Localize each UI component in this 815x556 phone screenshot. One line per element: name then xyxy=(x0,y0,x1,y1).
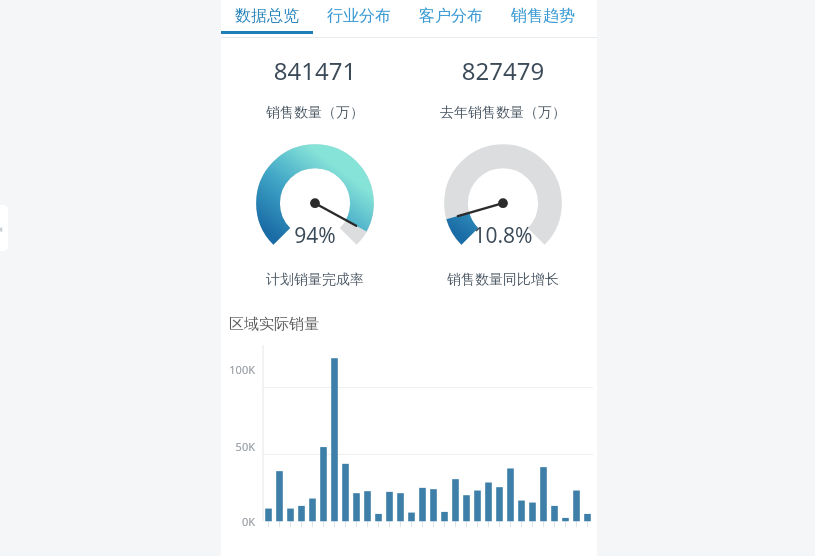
staticText: 销售趋势 xyxy=(511,6,575,26)
staticText: 10.8% xyxy=(409,221,597,250)
staticText: 100K xyxy=(221,362,255,377)
staticText: 销售数量（万） xyxy=(221,104,409,122)
button[interactable]: Collapse side panel xyxy=(0,205,8,251)
staticText: 客户分布 xyxy=(419,6,483,26)
staticText: 去年销售数量（万） xyxy=(409,104,597,122)
button[interactable]: 行业分布 xyxy=(313,0,405,37)
staticText: 0K xyxy=(221,514,255,529)
staticText: 50K xyxy=(221,439,255,454)
staticText: 销售数量同比增长 xyxy=(409,271,597,289)
button[interactable]: 销售趋势 xyxy=(497,0,589,37)
staticText: 数据总览 xyxy=(235,6,299,26)
button[interactable]: 客户分布 xyxy=(405,0,497,37)
staticText: 区域实际销量 xyxy=(229,315,319,334)
staticText: 841471 xyxy=(221,54,409,87)
staticText: 计划销量完成率 xyxy=(221,271,409,289)
staticText: 827479 xyxy=(409,54,597,87)
staticText: 94% xyxy=(221,221,409,250)
staticText: « xyxy=(0,222,3,234)
staticText: 行业分布 xyxy=(327,6,391,26)
button[interactable]: 数据总览 xyxy=(221,0,313,37)
